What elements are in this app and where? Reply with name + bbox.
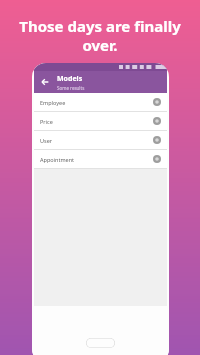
staticText: Employee [40, 99, 153, 106]
button[interactable]: User [34, 131, 167, 149]
staticText: Those days are finally over. [16, 16, 184, 55]
staticText: Price [40, 118, 153, 125]
button[interactable]: Appointment [34, 150, 167, 168]
staticText: Appointment [40, 156, 153, 163]
button[interactable]: Home [86, 338, 115, 348]
button[interactable]: Back [38, 75, 52, 89]
staticText: Some results [57, 85, 85, 91]
button[interactable]: Employee [34, 93, 167, 111]
button[interactable]: Price [34, 112, 167, 130]
staticText: Models [57, 74, 83, 84]
staticText: User [40, 137, 153, 144]
